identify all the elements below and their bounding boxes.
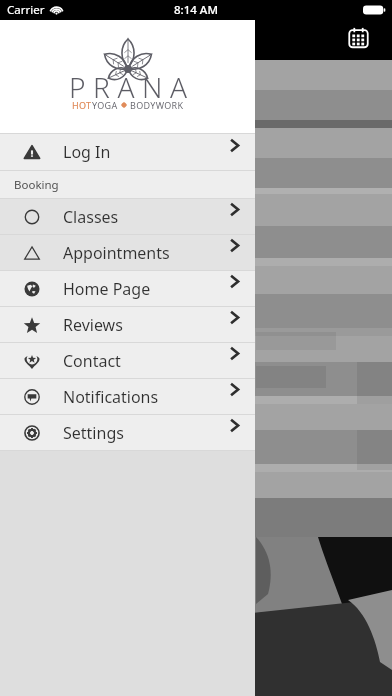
staticText: Classes [63,206,119,228]
button[interactable]: Appointments [0,235,255,270]
staticText: Reviews [63,314,123,336]
button[interactable]: Notifications [0,379,255,414]
staticText: Settings [63,422,124,444]
staticText: BODYWORK [130,99,184,111]
button[interactable]: Settings [0,415,255,450]
staticText: Notifications [63,386,159,408]
staticText: 8:14 AM [174,2,218,18]
staticText: Home Page [63,278,151,300]
staticText: Log In [63,141,111,163]
button[interactable]: Calendar [341,21,375,55]
button[interactable]: Home Page [0,271,255,306]
staticText: Contact [63,350,121,372]
staticText: PRANA [69,68,195,106]
staticText: HOT [72,99,92,111]
staticText: Carrier [7,2,45,18]
button[interactable]: Classes [0,199,255,234]
staticText: Appointments [63,242,170,264]
button[interactable]: Reviews [0,307,255,342]
button[interactable]: Contact [0,343,255,378]
button[interactable]: Log In [0,134,255,170]
staticText: YOGA [92,99,118,111]
staticText: Booking [14,177,59,193]
